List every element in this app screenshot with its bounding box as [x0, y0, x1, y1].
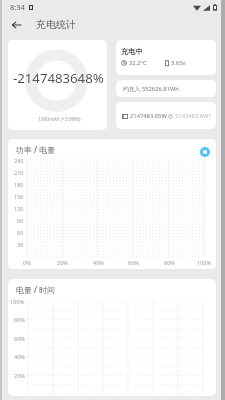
staticText: 60% [128, 259, 139, 266]
staticText: 8:34 [10, 2, 25, 12]
staticText: 180 [14, 181, 24, 188]
button[interactable]: Back [4, 14, 28, 36]
staticText: 电量 / 时间 [16, 284, 56, 295]
staticText: 80% [164, 259, 175, 266]
staticText: 20% [57, 259, 68, 266]
staticText: 100% [197, 259, 212, 266]
button[interactable]: 充电中 [116, 40, 216, 75]
staticText: 0% [23, 259, 31, 266]
staticText: 60% [14, 335, 25, 342]
staticText: -2147483648% [13, 69, 104, 87]
staticText: 1000mAh (+3.9Wh) [38, 116, 81, 123]
staticText: 约充入 552626.81Wh [123, 85, 179, 93]
staticText: 2147483.65W [130, 112, 167, 120]
staticText: 充电统计 [36, 18, 76, 31]
staticText: 240 [14, 157, 24, 164]
staticText: 150 [14, 193, 24, 200]
staticText: 120 [14, 205, 24, 212]
staticText: 40% [93, 259, 104, 266]
staticText: 充电中 [121, 47, 143, 56]
staticText: 2147483.6W? [175, 112, 212, 120]
button[interactable]: 约充入 552626.81Wh [116, 80, 216, 97]
staticText: 90 [17, 217, 24, 224]
button[interactable]: Refresh [200, 147, 210, 157]
staticText: 40% [14, 353, 25, 360]
staticText: 80% [14, 316, 25, 323]
staticText: 100% [10, 298, 25, 305]
button[interactable]: -2147483648% [8, 40, 107, 130]
staticText: 30 [17, 241, 24, 248]
staticText: 20% [14, 372, 25, 379]
staticText: 3.65v [171, 59, 186, 67]
staticText: 32.2°C [129, 59, 147, 67]
staticText: 210 [14, 169, 24, 176]
staticText: 60 [17, 229, 24, 236]
button[interactable]: 2147483.65W [116, 102, 216, 129]
staticText: 功率 / 电量 [16, 144, 56, 155]
